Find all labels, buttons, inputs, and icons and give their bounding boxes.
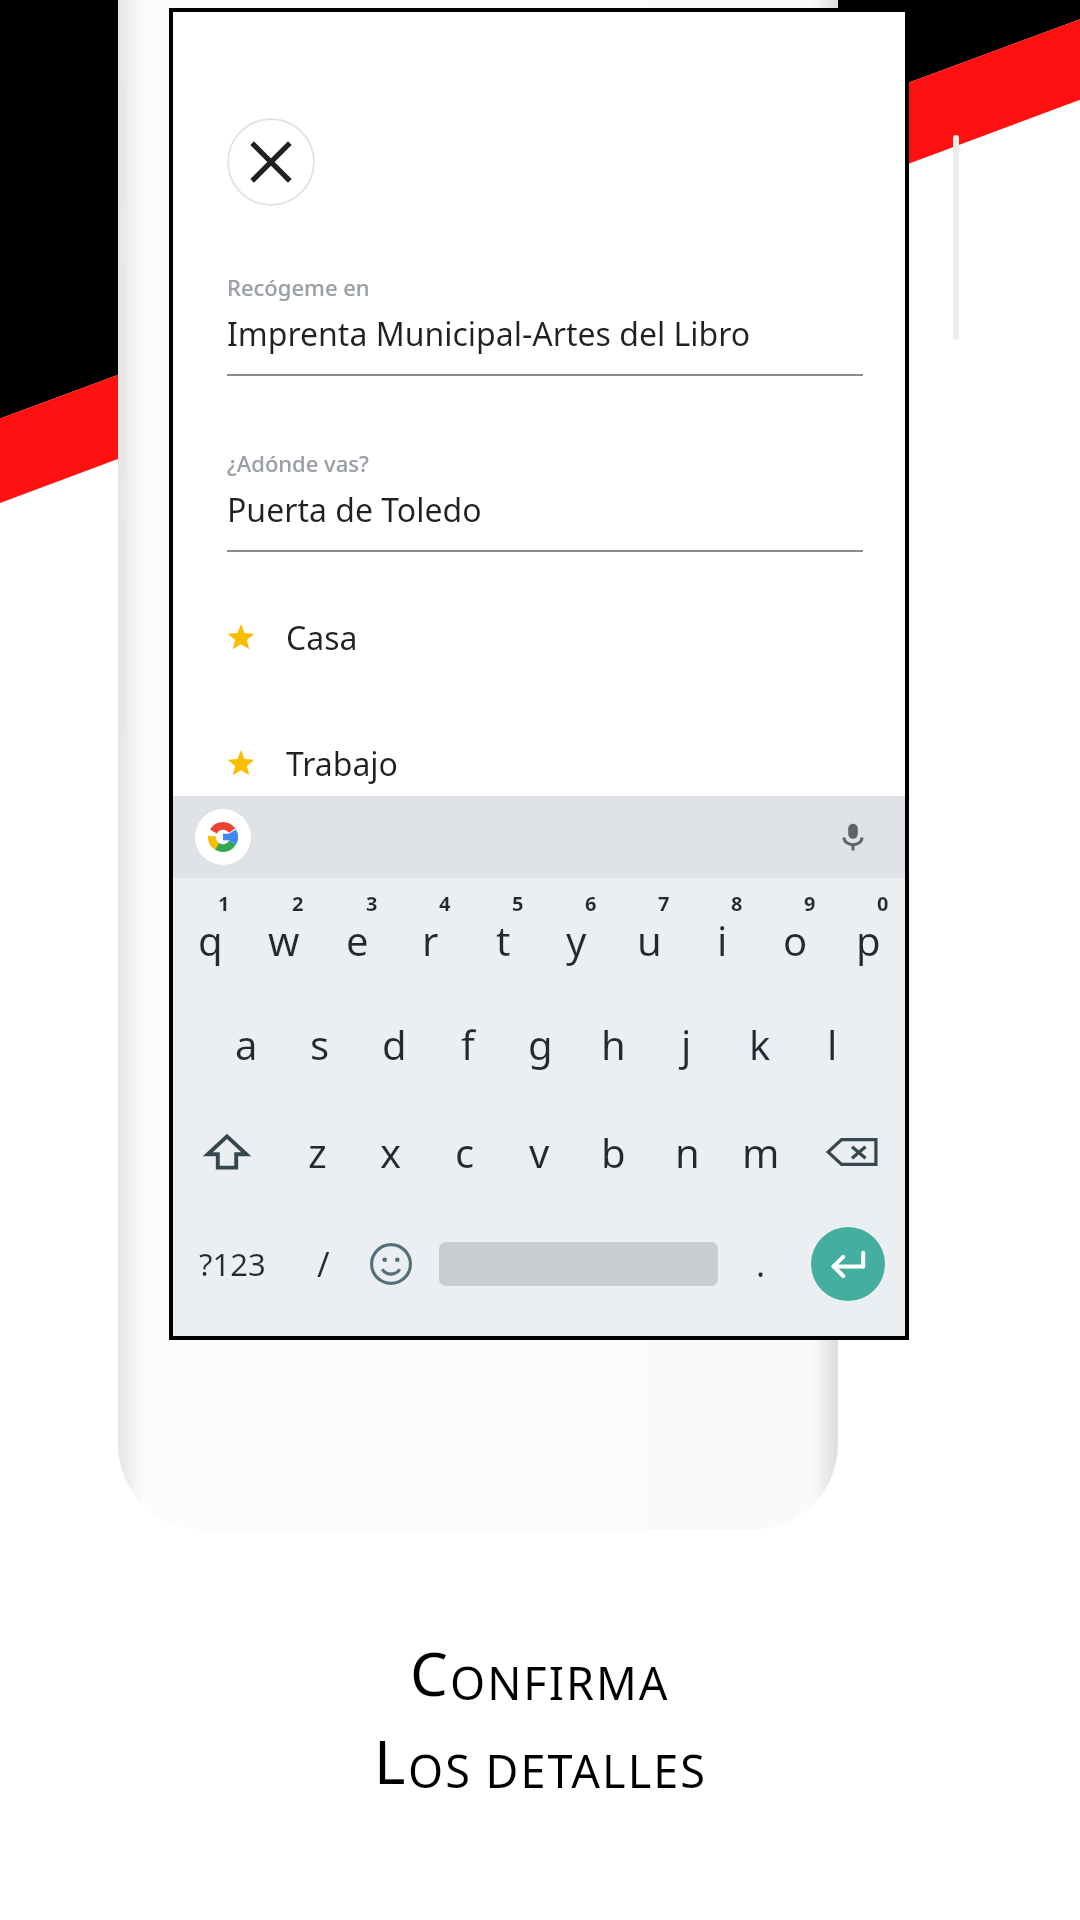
staticText: ¿Adónde vas? bbox=[227, 448, 369, 478]
staticText: ONFIRMA bbox=[450, 1652, 670, 1713]
staticText: 8 bbox=[731, 890, 743, 917]
staticText: h bbox=[601, 1017, 626, 1071]
button[interactable]: ¿Adónde vas? bbox=[227, 448, 863, 552]
staticText: Puerta de Toledo bbox=[227, 488, 482, 532]
button[interactable]: d bbox=[357, 990, 431, 1098]
staticText: Casa bbox=[286, 616, 358, 660]
button[interactable]: v bbox=[502, 1098, 576, 1206]
staticText: r bbox=[422, 913, 439, 967]
button[interactable]: Backspace bbox=[798, 1098, 905, 1206]
staticText: k bbox=[749, 1017, 771, 1071]
button[interactable]: f bbox=[431, 990, 504, 1098]
button[interactable]: Emoji bbox=[355, 1206, 427, 1322]
button[interactable]: k bbox=[723, 990, 796, 1098]
button[interactable]: g bbox=[504, 990, 577, 1098]
staticText: y bbox=[566, 913, 587, 967]
button[interactable]: 8 bbox=[686, 878, 759, 990]
button[interactable]: Voice input bbox=[827, 811, 879, 863]
button[interactable]: 7 bbox=[613, 878, 686, 990]
button[interactable]: . bbox=[730, 1206, 791, 1322]
staticText: Imprenta Municipal-Artes del Libro bbox=[227, 312, 751, 356]
button[interactable]: 5 bbox=[467, 878, 540, 990]
staticText: / bbox=[317, 1241, 330, 1287]
button[interactable]: Cerrar bbox=[227, 118, 315, 206]
staticText: L bbox=[374, 1720, 408, 1802]
button[interactable]: x bbox=[354, 1098, 428, 1206]
button[interactable]: z bbox=[280, 1098, 354, 1206]
button[interactable]: Shift bbox=[173, 1098, 280, 1206]
staticText: p bbox=[856, 913, 881, 967]
button[interactable]: s bbox=[283, 990, 357, 1098]
staticText: j bbox=[681, 1017, 692, 1071]
staticText: l bbox=[827, 1017, 838, 1071]
staticText: 0 bbox=[877, 890, 889, 917]
staticText: t bbox=[496, 913, 511, 967]
button[interactable]: 0 bbox=[832, 878, 905, 990]
staticText: Recógeme en bbox=[227, 272, 370, 302]
staticText: z bbox=[308, 1125, 327, 1179]
staticText: o bbox=[783, 913, 808, 967]
staticText: Trabajo bbox=[286, 742, 398, 786]
staticText: b bbox=[601, 1125, 626, 1179]
button[interactable]: Space bbox=[427, 1206, 730, 1322]
button[interactable]: h bbox=[577, 990, 650, 1098]
staticText: . bbox=[756, 1241, 766, 1287]
staticText: x bbox=[380, 1125, 402, 1179]
staticText: n bbox=[675, 1125, 700, 1179]
staticText: C bbox=[410, 1632, 450, 1714]
staticText: i bbox=[717, 913, 728, 967]
staticText: s bbox=[310, 1017, 330, 1071]
staticText: e bbox=[346, 913, 369, 967]
staticText: OS DETALLES bbox=[408, 1740, 707, 1801]
staticText: ?123 bbox=[199, 1243, 266, 1285]
button[interactable]: Google bbox=[195, 809, 251, 865]
button[interactable]: 2 bbox=[247, 878, 321, 990]
button[interactable]: 3 bbox=[321, 878, 394, 990]
button[interactable]: Enter bbox=[791, 1206, 905, 1322]
staticText: m bbox=[742, 1125, 780, 1179]
button[interactable]: b bbox=[576, 1098, 650, 1206]
button[interactable]: Casa bbox=[227, 616, 863, 660]
button[interactable]: / bbox=[291, 1206, 355, 1322]
button[interactable]: j bbox=[650, 990, 723, 1098]
staticText: a bbox=[235, 1017, 258, 1071]
staticText: 5 bbox=[512, 890, 524, 917]
button[interactable]: Recógeme en bbox=[227, 272, 863, 376]
staticText: v bbox=[529, 1125, 550, 1179]
button[interactable]: 6 bbox=[540, 878, 613, 990]
staticText: w bbox=[268, 913, 300, 967]
button[interactable]: 1 bbox=[173, 878, 247, 990]
staticText: u bbox=[637, 913, 662, 967]
staticText: 6 bbox=[585, 890, 597, 917]
staticText: 2 bbox=[292, 890, 304, 917]
staticText: g bbox=[528, 1017, 553, 1071]
button[interactable]: n bbox=[650, 1098, 724, 1206]
button[interactable]: 4 bbox=[394, 878, 467, 990]
staticText: 7 bbox=[658, 890, 670, 917]
staticText: f bbox=[461, 1017, 475, 1071]
staticText: d bbox=[382, 1017, 407, 1071]
button[interactable]: m bbox=[724, 1098, 798, 1206]
staticText: 3 bbox=[366, 890, 378, 917]
button[interactable]: a bbox=[209, 990, 283, 1098]
staticText: 9 bbox=[804, 890, 816, 917]
button[interactable]: c bbox=[428, 1098, 502, 1206]
button[interactable]: l bbox=[796, 990, 869, 1098]
button[interactable]: 9 bbox=[759, 878, 832, 990]
button[interactable]: ?123 bbox=[173, 1206, 291, 1322]
staticText: q bbox=[198, 913, 223, 967]
button[interactable]: Trabajo bbox=[227, 742, 863, 786]
staticText: 4 bbox=[439, 890, 451, 917]
staticText: c bbox=[455, 1125, 475, 1179]
staticText: 1 bbox=[218, 890, 230, 917]
